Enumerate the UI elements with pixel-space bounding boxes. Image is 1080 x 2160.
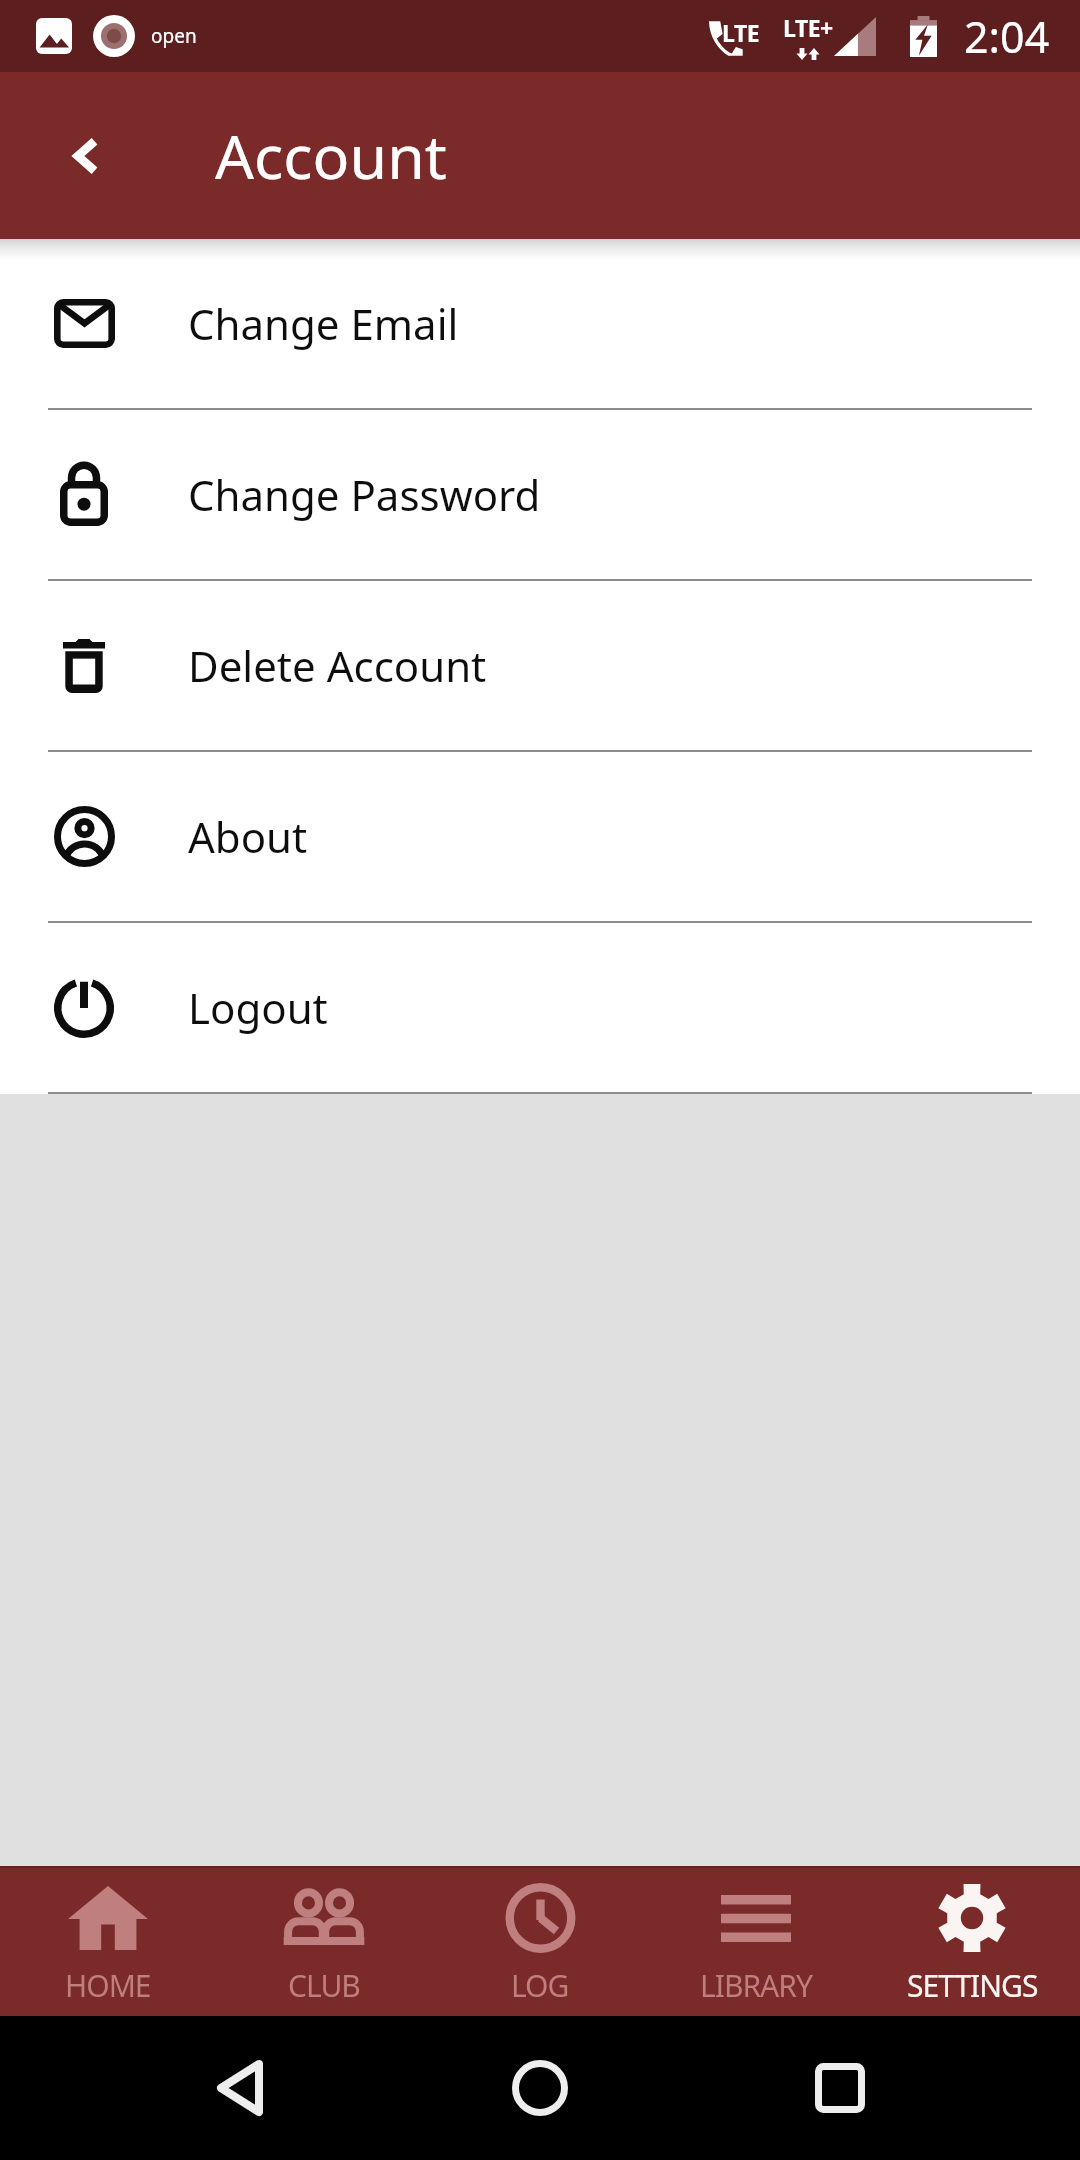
button[interactable]: Back	[90, 2016, 390, 2160]
staticText: LTE	[722, 17, 760, 48]
staticText: Logout	[188, 979, 328, 1036]
button[interactable]: Change Email	[0, 239, 1080, 408]
staticText: About	[188, 808, 308, 865]
button[interactable]: Home	[390, 2016, 690, 2160]
button[interactable]: Delete Account	[0, 581, 1080, 750]
button[interactable]: Logout	[0, 923, 1080, 1092]
button[interactable]: LOG	[432, 1866, 648, 2016]
staticText: Delete Account	[188, 637, 487, 694]
staticText: LTE+	[783, 12, 833, 43]
staticText: Account	[215, 114, 447, 197]
button[interactable]: SETTINGS	[864, 1866, 1080, 2016]
button[interactable]: Recent apps	[690, 2016, 990, 2160]
staticText: HOME	[65, 1965, 151, 2006]
button[interactable]: Navigate up	[0, 72, 168, 239]
staticText: Change Email	[188, 295, 459, 352]
staticText: LOG	[511, 1965, 569, 2006]
button[interactable]: LIBRARY	[648, 1866, 864, 2016]
staticText: open	[151, 23, 197, 49]
button[interactable]: CLUB	[216, 1866, 432, 2016]
staticText: CLUB	[288, 1965, 360, 2006]
staticText: SETTINGS	[907, 1965, 1038, 2006]
button[interactable]: Change Password	[0, 410, 1080, 579]
staticText: 2:04	[964, 7, 1050, 66]
button[interactable]: HOME	[0, 1866, 216, 2016]
staticText: Change Password	[188, 466, 541, 523]
staticText: LIBRARY	[700, 1965, 812, 2006]
button[interactable]: About	[0, 752, 1080, 921]
